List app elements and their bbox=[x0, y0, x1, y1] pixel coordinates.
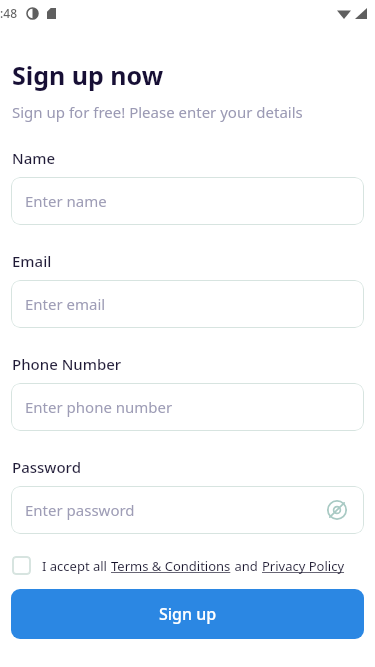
button[interactable]: Sign up bbox=[11, 589, 364, 639]
staticText: :48 bbox=[0, 5, 17, 21]
staticText: Sign up now bbox=[12, 58, 164, 92]
staticText: Name bbox=[12, 148, 56, 168]
staticText: Enter name bbox=[25, 191, 350, 211]
button[interactable]: Show password bbox=[324, 497, 350, 523]
staticText: Password bbox=[12, 457, 81, 477]
button[interactable]: Enter phone number bbox=[11, 383, 364, 431]
staticText: and bbox=[231, 557, 262, 575]
staticText: Enter phone number bbox=[25, 397, 350, 417]
staticText: Sign up bbox=[159, 603, 217, 625]
button[interactable]: Enter password bbox=[11, 486, 364, 534]
staticText: Sign up for free! Please enter your deta… bbox=[12, 102, 303, 122]
button[interactable]: Accept terms and conditions bbox=[12, 556, 31, 575]
button[interactable]: Enter name bbox=[11, 177, 364, 225]
staticText: Enter password bbox=[25, 500, 324, 520]
button[interactable]: Enter email bbox=[11, 280, 364, 328]
button[interactable]: Privacy Policy bbox=[262, 557, 345, 575]
staticText: Enter email bbox=[25, 294, 350, 314]
staticText: I accept all bbox=[42, 557, 111, 575]
staticText: Email bbox=[12, 251, 52, 271]
staticText: Phone Number bbox=[12, 354, 122, 374]
button[interactable]: Terms & Conditions bbox=[111, 557, 231, 575]
